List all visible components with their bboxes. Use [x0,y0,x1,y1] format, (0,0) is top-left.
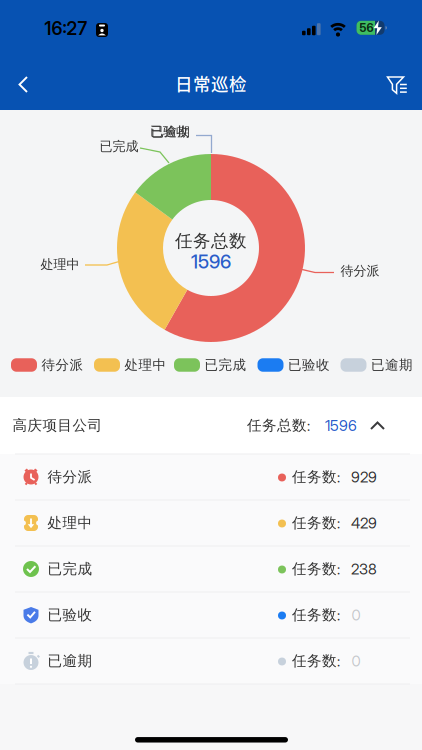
staticText: 已完成 [99,138,138,155]
staticText: 429 [351,514,377,532]
staticText: 0 [351,652,360,670]
staticText: 任务数: [292,560,340,578]
staticText: 56 [359,21,373,35]
staticText: 已逾期 [371,356,413,373]
staticText: 任务总数: [247,416,310,435]
staticText: 已逾期 [47,652,92,670]
staticText: 16:27 [44,18,87,39]
staticText: 已完成 [47,560,92,578]
staticText: 929 [351,468,377,486]
staticText: 待分派 [47,468,92,486]
staticText: 已验收 [47,606,92,624]
staticText: 1596 [191,250,231,273]
staticText: 处理中 [47,514,92,532]
staticText: 已完成 [204,356,246,373]
staticText: 待分派 [41,356,83,373]
staticText: 任务数: [292,468,340,486]
staticText: 已逾期 [151,124,190,140]
staticText: 处理中 [40,256,79,273]
staticText: 待分派 [340,263,379,279]
staticText: 任务数: [292,652,340,670]
staticText: 已验收 [150,123,189,140]
staticText: 1596 [325,416,357,434]
staticText: 任务数: [292,606,340,624]
staticText: 0 [351,606,360,624]
staticText: 238 [351,560,377,578]
staticText: 日常巡检 [175,70,247,96]
staticText: 任务总数 [175,230,247,252]
staticText: 高庆项目公司 [12,416,102,435]
staticText: 任务数: [292,514,340,532]
staticText: 已验收 [288,356,330,373]
staticText: 处理中 [124,356,166,373]
